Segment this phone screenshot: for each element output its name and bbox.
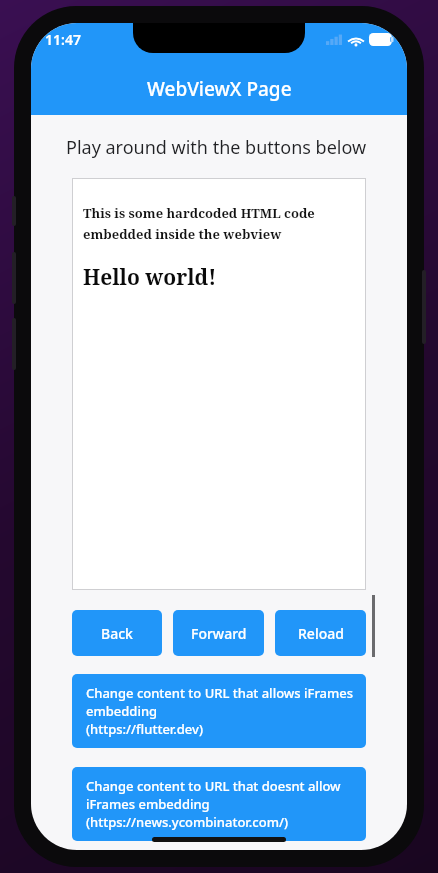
staticText: Reload [298, 624, 344, 643]
staticText: Change content to URL that allows iFrame… [86, 684, 354, 702]
staticText: Back [101, 624, 133, 643]
staticText: 11:47 [45, 30, 81, 49]
staticText: This is some hardcoded HTML code [83, 204, 315, 222]
staticText: embedded inside the webview [83, 225, 282, 243]
staticText: Forward [191, 624, 247, 643]
staticText: iFrames embedding [86, 795, 210, 813]
button[interactable]: Forward [173, 610, 264, 656]
staticText: (https://flutter.dev) [86, 720, 203, 738]
staticText: Play around with the buttons below [66, 135, 367, 160]
staticText: WebViewX Page [147, 76, 292, 102]
staticText: Hello world! [83, 263, 217, 292]
staticText: embedding [86, 702, 158, 720]
staticText: Change content to URL that doesnt allow [86, 777, 341, 795]
button[interactable]: Change content to URL that allows iFrame… [72, 674, 366, 748]
button[interactable]: Reload [275, 610, 366, 656]
staticText: (https://news.ycombinator.com/) [86, 813, 289, 831]
button[interactable]: Change content to URL that doesnt allow [72, 767, 366, 841]
button[interactable]: Back [72, 610, 162, 656]
